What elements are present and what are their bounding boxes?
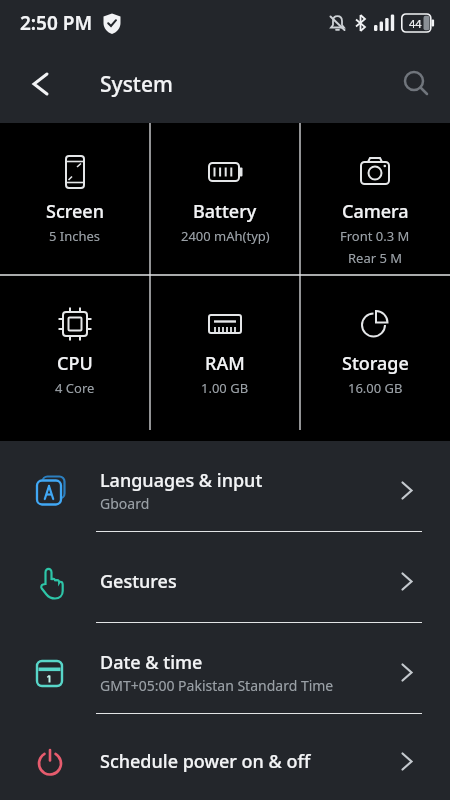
staticText: RAM — [205, 351, 245, 376]
staticText: 16.00 GB — [348, 379, 403, 397]
button[interactable]: RAM — [150, 275, 300, 441]
button[interactable]: Languages & input — [0, 450, 450, 531]
staticText: 2:50 PM — [20, 10, 93, 36]
staticText: Front 0.3 M — [340, 227, 410, 245]
staticText: CPU — [57, 351, 93, 376]
button[interactable]: Gestures — [0, 541, 450, 622]
button[interactable] — [400, 68, 432, 100]
staticText: Storage — [342, 351, 409, 376]
staticText: Date & time — [100, 650, 203, 675]
button[interactable]: Battery — [150, 123, 300, 275]
staticText: Camera — [342, 199, 409, 224]
staticText: Battery — [193, 199, 257, 224]
staticText: 4 Core — [55, 379, 95, 397]
staticText: Gboard — [100, 494, 150, 513]
staticText: Gestures — [100, 569, 177, 594]
staticText: Screen — [46, 199, 104, 224]
staticText: Languages & input — [100, 468, 263, 493]
button[interactable]: CPU — [0, 275, 150, 441]
staticText: System — [100, 70, 173, 99]
button[interactable]: Storage — [300, 275, 450, 441]
staticText: 44 — [409, 16, 422, 31]
button[interactable]: Screen — [0, 123, 150, 275]
staticText: Schedule power on & off — [100, 749, 311, 774]
staticText: 1.00 GB — [201, 379, 249, 397]
button[interactable]: Date & time — [0, 632, 450, 713]
staticText: Rear 5 M — [348, 249, 403, 267]
button[interactable]: Schedule power on & off — [0, 723, 450, 800]
staticText: 2400 mAh(typ) — [181, 227, 270, 245]
button[interactable]: Camera — [300, 123, 450, 275]
button[interactable] — [24, 68, 56, 100]
staticText: GMT+05:00 Pakistan Standard Time — [100, 676, 334, 695]
staticText: 5 Inches — [49, 227, 101, 245]
